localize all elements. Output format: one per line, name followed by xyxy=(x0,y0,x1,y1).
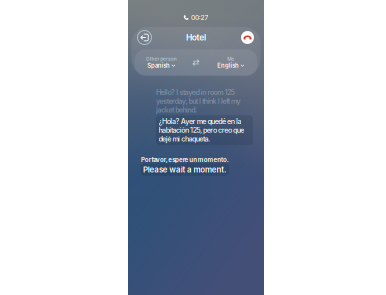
staticText: English xyxy=(217,62,239,69)
staticText: Hello? I stayed in room 125 yesterday, b… xyxy=(156,88,241,114)
button[interactable]: End call xyxy=(237,27,257,47)
staticText: Por favor, espere un momento. xyxy=(141,156,229,163)
staticText: Other person xyxy=(146,56,177,62)
staticText: Me xyxy=(227,56,234,62)
button[interactable]: Me xyxy=(204,52,257,73)
staticText: Please wait a moment. xyxy=(143,165,227,174)
staticText: Spanish xyxy=(147,62,170,69)
button[interactable]: Leave translation xyxy=(134,27,154,47)
staticText: Hotel xyxy=(186,32,206,43)
staticText: ¿Hola? Ayer me quedé en la habitación 12… xyxy=(158,117,244,143)
staticText: 00:27 xyxy=(191,13,208,22)
button[interactable]: Other person xyxy=(134,52,188,73)
